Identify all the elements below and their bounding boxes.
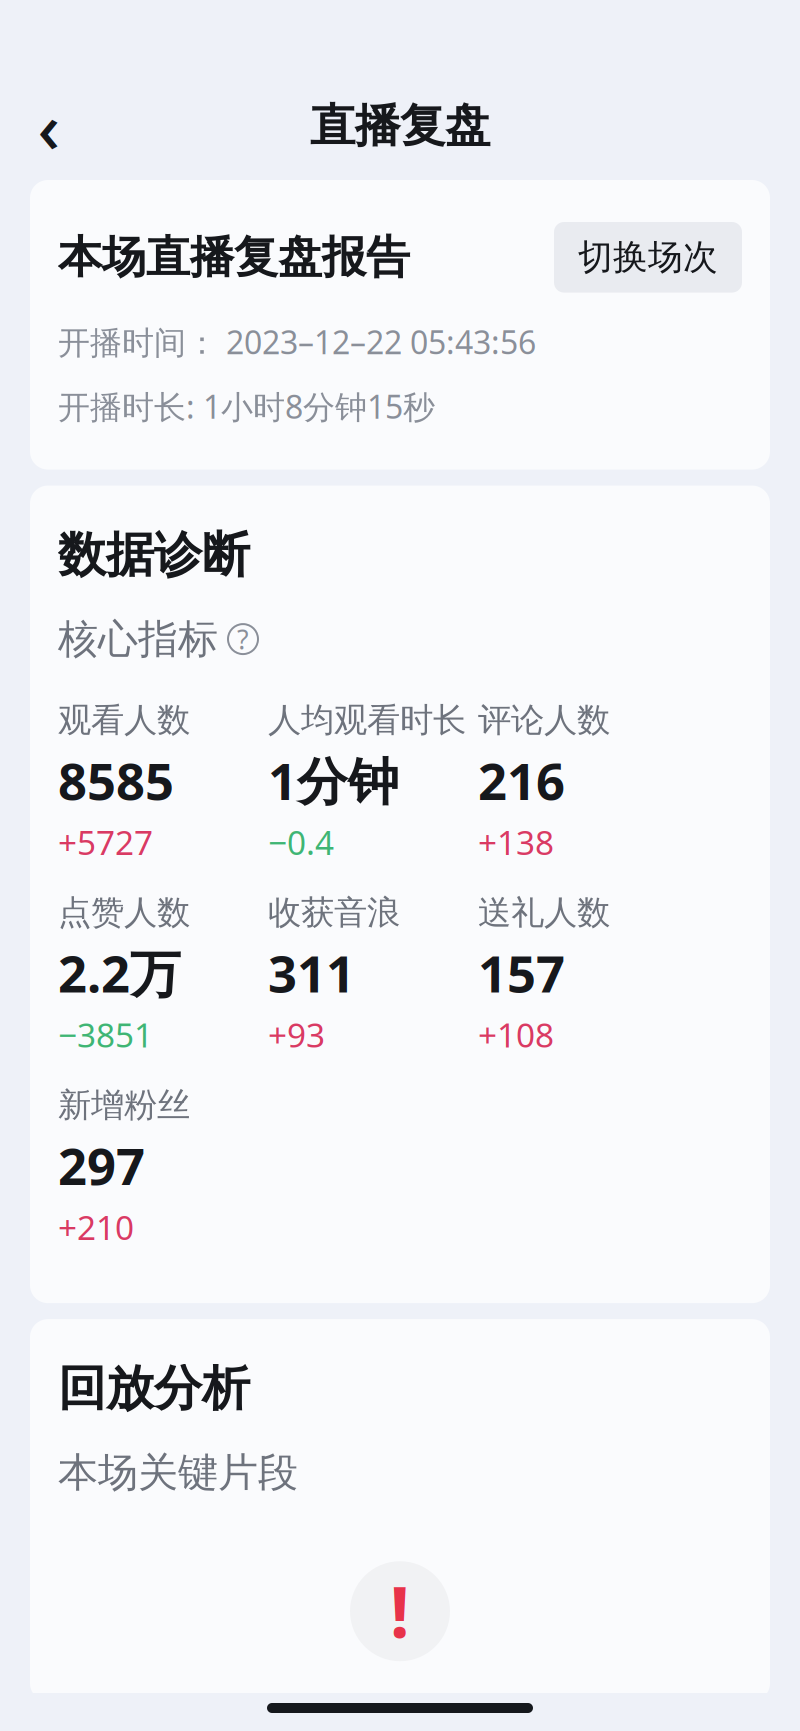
staticText: 新增粉丝 xyxy=(58,1085,190,1125)
staticText: 点赞人数 xyxy=(58,892,190,933)
staticText: 157 xyxy=(478,939,565,1006)
button[interactable]: 切换场次 xyxy=(554,222,742,293)
staticText: 2.2万 xyxy=(58,939,181,1006)
staticText: ? xyxy=(237,621,249,657)
staticText: 收获音浪 xyxy=(268,892,400,933)
button[interactable]: Back xyxy=(14,91,84,161)
staticText: 本场关键片段 xyxy=(58,1448,298,1497)
staticText: 直播复盘 xyxy=(310,98,490,154)
staticText: 切换场次 xyxy=(578,236,718,279)
staticText: +108 xyxy=(478,1012,554,1057)
staticText: 开播时长: 1小时8分钟15秒 xyxy=(58,385,435,428)
staticText: 数据诊断 xyxy=(58,526,250,585)
staticText: 216 xyxy=(478,747,565,814)
staticText: 人均观看时长 xyxy=(268,700,466,741)
staticText: 311 xyxy=(268,939,355,1006)
staticText: 297 xyxy=(58,1132,145,1199)
staticText: 8585 xyxy=(58,747,174,814)
staticText: 评论人数 xyxy=(478,700,610,741)
staticText: 本场直播复盘报告 xyxy=(58,230,410,284)
staticText: +93 xyxy=(268,1012,325,1057)
staticText: ! xyxy=(390,1565,410,1657)
staticText: 观看人数 xyxy=(58,700,190,741)
staticText: 送礼人数 xyxy=(478,892,610,933)
staticText: 回放分析 xyxy=(58,1359,250,1418)
button[interactable]: 核心指标说明 xyxy=(228,624,258,654)
staticText: 1分钟 xyxy=(268,747,399,814)
staticText: −0.4 xyxy=(268,820,334,864)
staticText: +210 xyxy=(58,1205,134,1249)
staticText: 核心指标 xyxy=(58,614,218,664)
staticText: −3851 xyxy=(58,1012,153,1057)
staticText: +138 xyxy=(478,820,554,864)
staticText: 开播时间： 2023–12–22 05:43:56 xyxy=(58,321,536,363)
staticText: +5727 xyxy=(58,820,153,864)
staticText: ‹ xyxy=(37,80,60,172)
